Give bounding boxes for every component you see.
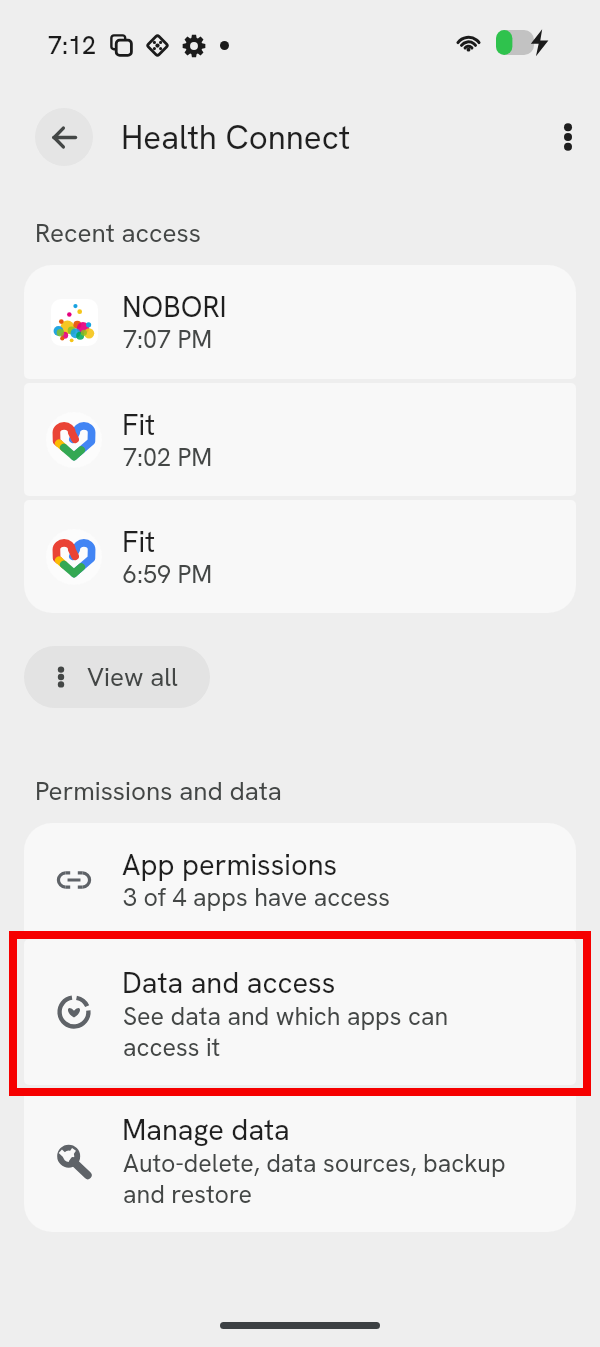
staticText: Data and access bbox=[122, 964, 336, 1002]
button[interactable]: NOBORI bbox=[24, 265, 576, 379]
staticText: 6:59 PM bbox=[123, 558, 213, 591]
button[interactable]: Data and access bbox=[24, 939, 576, 1085]
staticText: Manage data bbox=[122, 1111, 290, 1149]
staticText: 7:07 PM bbox=[123, 323, 213, 356]
button[interactable]: View all bbox=[24, 646, 210, 708]
staticText: Auto-delete, data sources, backup and re… bbox=[123, 1147, 523, 1211]
button[interactable]: Manage data bbox=[24, 1088, 576, 1232]
button[interactable]: Fit bbox=[24, 383, 576, 496]
button[interactable]: Fit bbox=[24, 500, 576, 613]
staticText: 7:12 bbox=[48, 29, 97, 62]
staticText: Health Connect bbox=[121, 116, 351, 159]
staticText: Permissions and data bbox=[35, 774, 282, 808]
staticText: View all bbox=[87, 660, 179, 694]
staticText: 7:02 PM bbox=[123, 441, 213, 474]
button[interactable]: App permissions bbox=[24, 823, 576, 936]
staticText: Fit bbox=[122, 523, 155, 561]
button[interactable]: More options bbox=[544, 113, 592, 161]
staticText: Fit bbox=[122, 406, 155, 444]
staticText: See data and which apps can access it bbox=[123, 1000, 523, 1064]
staticText: Recent access bbox=[35, 216, 201, 250]
staticText: App permissions bbox=[122, 846, 338, 884]
staticText: 3 of 4 apps have access bbox=[123, 881, 391, 914]
button[interactable]: Back bbox=[35, 108, 93, 166]
staticText: NOBORI bbox=[122, 288, 227, 326]
